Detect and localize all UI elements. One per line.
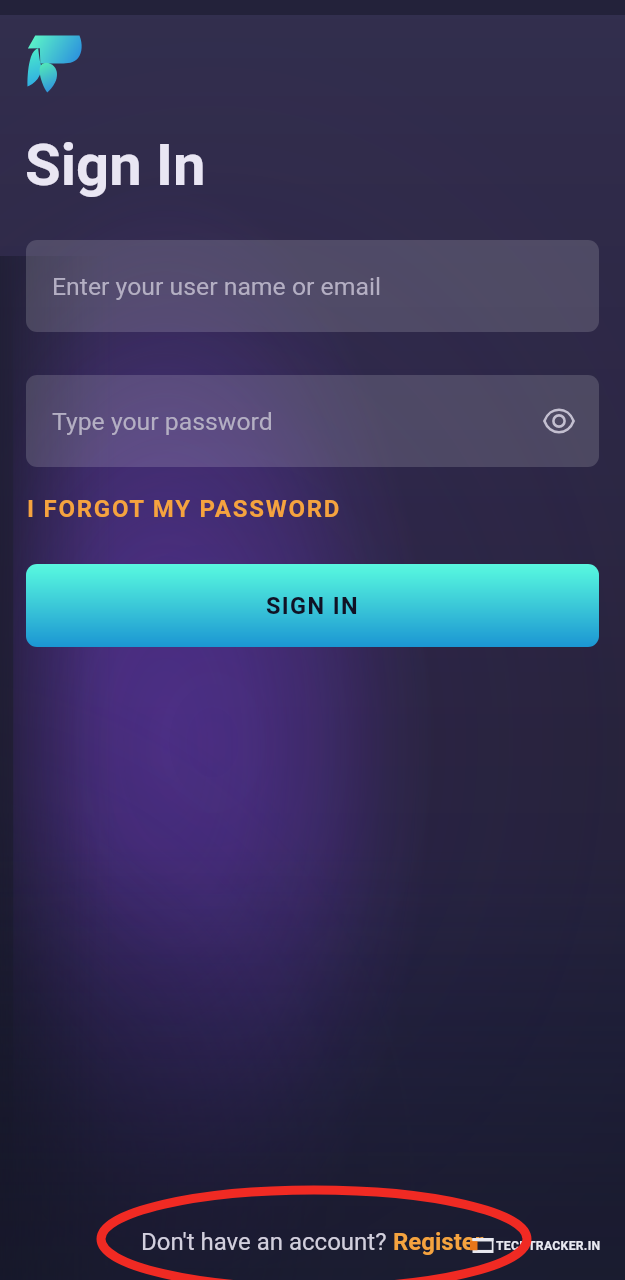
staticText: Register xyxy=(393,1228,484,1256)
staticText: I FORGOT MY PASSWORD xyxy=(27,495,342,523)
button[interactable]: I FORGOT MY PASSWORD xyxy=(26,495,343,523)
button[interactable]: Type your password xyxy=(26,375,599,467)
staticText: TECHTRACKER.IN xyxy=(496,1239,601,1253)
button[interactable]: Show password xyxy=(540,402,578,440)
staticText: Don't have an account? xyxy=(141,1228,393,1256)
button[interactable]: Enter your user name or email xyxy=(26,240,599,332)
staticText: Type your password xyxy=(52,407,273,436)
button[interactable]: Register xyxy=(393,1228,484,1256)
staticText: Enter your user name or email xyxy=(52,272,382,301)
staticText: Sign In xyxy=(25,131,206,199)
button[interactable]: SIGN IN xyxy=(26,564,599,647)
staticText: SIGN IN xyxy=(266,592,360,620)
